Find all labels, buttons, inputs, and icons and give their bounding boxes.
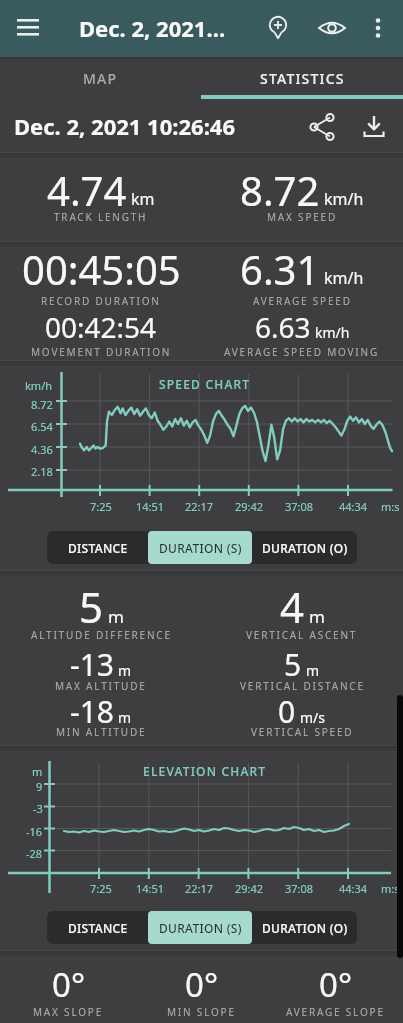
staticText: 14:51 (136, 881, 165, 896)
staticText: AVERAGE SLOPE (286, 1005, 385, 1019)
staticText: km/h (315, 323, 350, 342)
staticText: 7:25 (90, 499, 112, 514)
staticText: m/s (300, 708, 326, 727)
staticText: 5 (284, 644, 302, 685)
staticText: Dec. 2, 2021 10:26:46 (14, 111, 235, 141)
staticText: m (118, 661, 132, 680)
staticText: km (131, 188, 155, 210)
staticText: -16 (26, 824, 43, 839)
button[interactable]: DURATION (S) (148, 531, 252, 564)
button[interactable]: DURATION (O) (252, 911, 357, 944)
staticText: m (32, 764, 43, 779)
staticText: MAX ALTITUDE (55, 679, 147, 693)
staticText: 37:08 (285, 499, 314, 514)
staticText: 4 (280, 578, 305, 635)
staticText: DISTANCE (68, 920, 128, 936)
staticText: 44:34 (339, 499, 368, 514)
staticText: m (306, 661, 320, 680)
button[interactable]: DISTANCE (47, 531, 148, 564)
staticText: 6.54 (31, 419, 53, 434)
staticText: m:s (381, 499, 400, 514)
staticText: -28 (26, 846, 43, 861)
button[interactable] (262, 12, 294, 44)
staticText: 0° (52, 962, 85, 1007)
staticText: 22:17 (185, 499, 214, 514)
staticText: DURATION (O) (262, 920, 348, 936)
staticText: 00:42:54 (45, 308, 157, 346)
staticText: 44:34 (339, 881, 368, 896)
staticText: 5 (79, 578, 104, 635)
staticText: VERTICAL DISTANCE (240, 679, 365, 693)
staticText: STATISTICS (260, 69, 345, 88)
staticText: MAX SPEED (267, 210, 338, 224)
staticText: DURATION (S) (159, 540, 242, 556)
staticText: 0° (319, 962, 352, 1007)
button[interactable]: DISTANCE (47, 911, 148, 944)
staticText: DISTANCE (68, 540, 128, 556)
button[interactable] (316, 12, 348, 44)
staticText: 37:08 (285, 881, 314, 896)
staticText: 4.36 (31, 442, 53, 457)
staticText: 6.31 (240, 242, 320, 296)
staticText: 6.63 (255, 308, 311, 346)
staticText: 29:42 (235, 499, 264, 514)
staticText: m (309, 605, 325, 628)
staticText: MAP (83, 69, 118, 88)
staticText: -18 (70, 691, 114, 732)
staticText: km/h (25, 378, 53, 393)
staticText: SPEED CHART (159, 376, 251, 392)
staticText: DURATION (O) (262, 540, 348, 556)
staticText: 9 (36, 779, 43, 794)
staticText: AVERAGE SPEED MOVING (224, 345, 380, 359)
staticText: 0° (185, 962, 218, 1007)
staticText: VERTICAL ASCENT (246, 628, 358, 642)
staticText: m:s (381, 881, 400, 896)
staticText: MOVEMENT DURATION (31, 345, 172, 359)
staticText: m (108, 605, 124, 628)
staticText: 2.18 (31, 464, 53, 479)
button[interactable] (306, 111, 338, 143)
staticText: DURATION (S) (159, 920, 242, 936)
staticText: MIN ALTITUDE (56, 725, 147, 739)
staticText: MIN SLOPE (167, 1005, 236, 1019)
staticText: km/h (324, 267, 364, 289)
button[interactable] (362, 12, 394, 44)
staticText: Dec. 2, 2021… (79, 13, 226, 43)
staticText: 22:17 (185, 881, 214, 896)
staticText: 4.74 (47, 163, 127, 217)
button[interactable]: DURATION (S) (148, 911, 252, 944)
staticText: 8.72 (31, 397, 53, 412)
staticText: ALTITUDE DIFFERENCE (31, 628, 172, 642)
staticText: -3 (33, 801, 43, 816)
staticText: RECORD DURATION (41, 294, 161, 308)
staticText: 00:45:05 (22, 242, 181, 296)
staticText: 8.72 (240, 163, 320, 217)
staticText: ELEVATION CHART (143, 763, 267, 779)
button[interactable]: DURATION (O) (252, 531, 357, 564)
staticText: 14:51 (136, 499, 165, 514)
staticText: AVERAGE SPEED (253, 294, 352, 308)
staticText: VERTICAL SPEED (251, 725, 354, 739)
button[interactable]: MAP (0, 56, 201, 100)
staticText: 7:25 (90, 881, 112, 896)
button[interactable]: STATISTICS (201, 56, 403, 100)
button[interactable] (358, 111, 390, 143)
staticText: 0 (278, 691, 296, 732)
staticText: TRACK LENGTH (54, 210, 148, 224)
button[interactable] (12, 15, 44, 41)
staticText: -13 (70, 644, 114, 685)
staticText: MAX SLOPE (33, 1005, 104, 1019)
staticText: km/h (324, 188, 364, 210)
staticText: m (118, 708, 132, 727)
staticText: 29:42 (235, 881, 264, 896)
